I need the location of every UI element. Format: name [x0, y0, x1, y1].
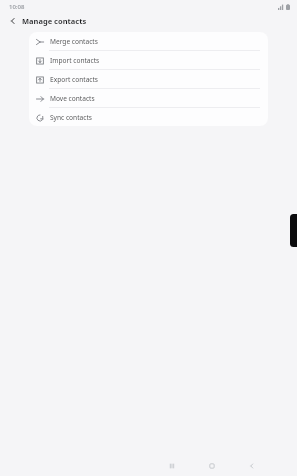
button[interactable]: Home	[203, 457, 221, 475]
staticText: 10:08	[9, 3, 25, 11]
button[interactable]: Move contacts	[29, 89, 268, 107]
staticText: Import contacts	[50, 56, 100, 65]
staticText: Move contacts	[50, 94, 95, 103]
button[interactable]: Recent apps	[163, 457, 181, 475]
button[interactable]: Sync contacts	[29, 108, 268, 126]
button[interactable]: Navigate up	[6, 14, 19, 27]
staticText: Merge contacts	[50, 37, 98, 46]
staticText: Export contacts	[50, 75, 99, 84]
staticText: Sync contacts	[50, 113, 92, 122]
button[interactable]: Edge panel handle	[290, 214, 297, 247]
button[interactable]: Merge contacts	[29, 32, 268, 50]
staticText: Manage contacts	[22, 16, 87, 26]
button[interactable]: Export contacts	[29, 70, 268, 88]
button[interactable]: Back	[243, 457, 261, 475]
button[interactable]: Import contacts	[29, 51, 268, 69]
